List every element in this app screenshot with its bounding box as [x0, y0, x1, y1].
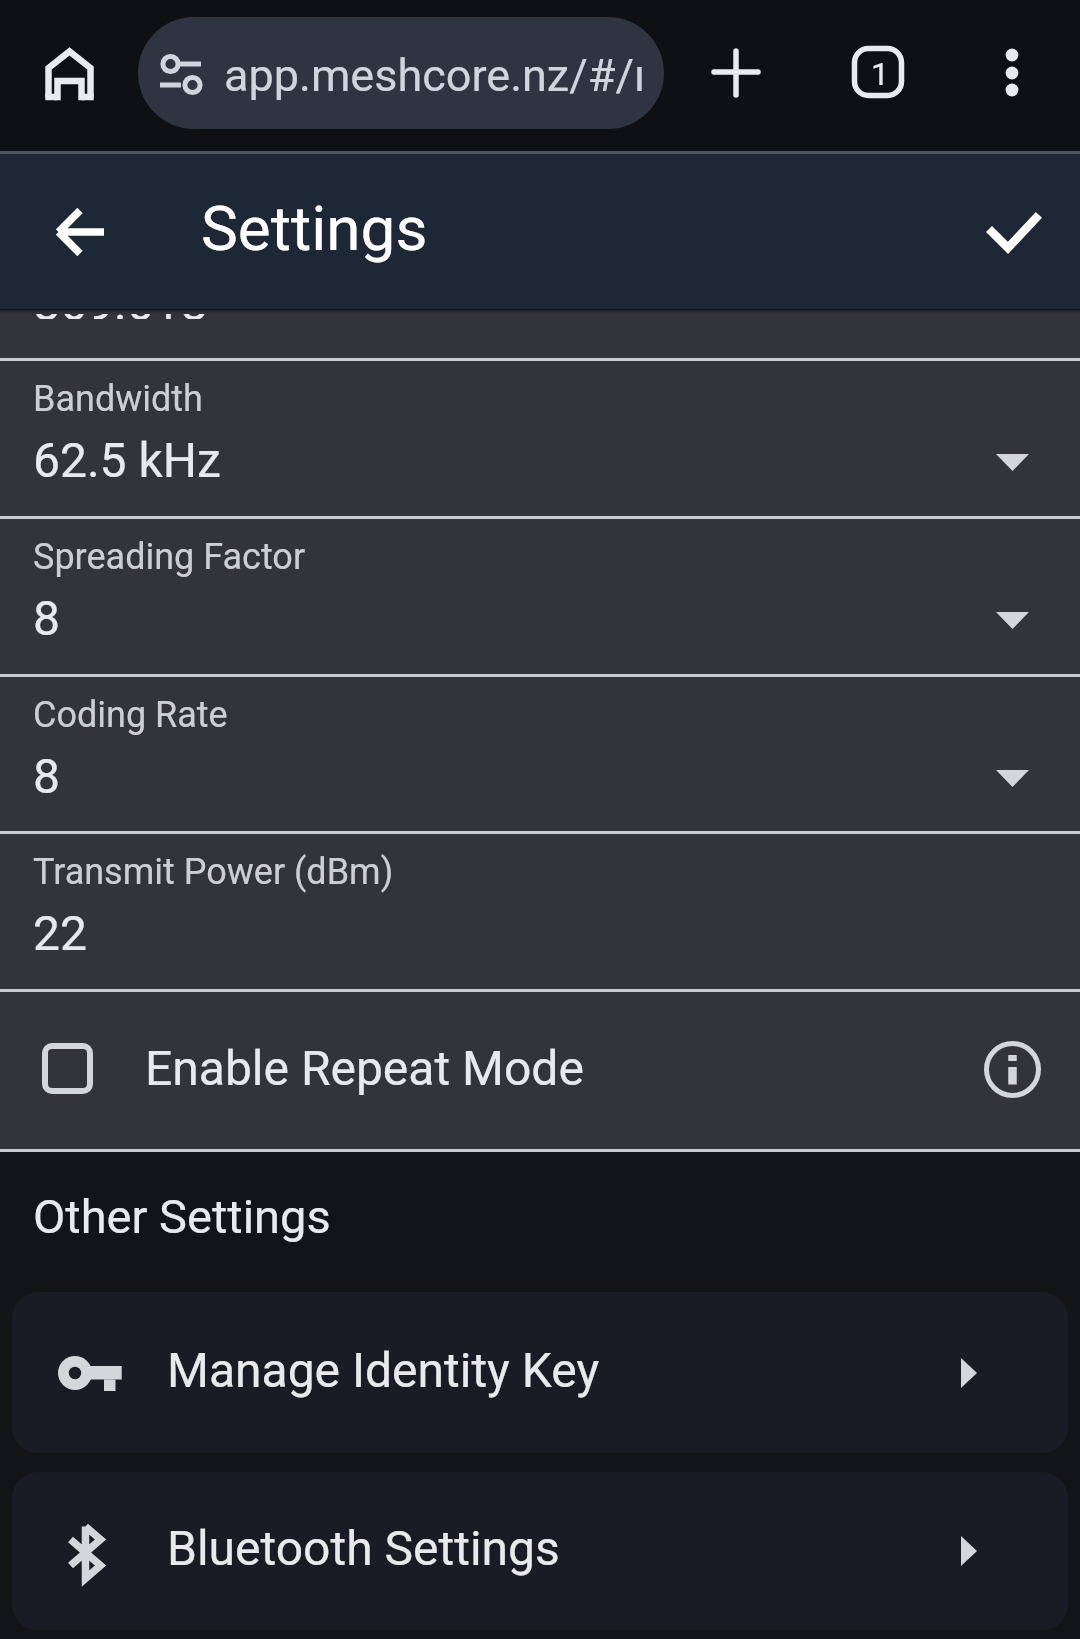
staticText: Settings [201, 192, 428, 265]
button[interactable]: Transmit Power (dBm) [0, 834, 1080, 989]
staticText: Enable Repeat Mode [145, 1040, 584, 1096]
staticText: Bandwidth [33, 378, 203, 420]
button[interactable]: Tabs [832, 26, 924, 118]
staticText: 62.5 kHz [33, 432, 221, 488]
button[interactable]: Home [29, 32, 109, 112]
staticText: Manage Identity Key [167, 1342, 600, 1398]
button[interactable]: More options [966, 26, 1058, 118]
button[interactable]: New tab [690, 26, 782, 118]
button[interactable]: Enable Repeat Mode [0, 992, 1080, 1149]
button[interactable]: app.meshcore.nz/#/ı [138, 17, 664, 129]
staticText: 8 [33, 748, 60, 804]
staticText: Bluetooth Settings [167, 1520, 560, 1576]
button[interactable]: Back [29, 184, 125, 280]
staticText: Coding Rate [33, 694, 228, 736]
button[interactable]: Spreading Factor [0, 519, 1080, 674]
staticText: 1 [871, 55, 889, 93]
button[interactable]: Bandwidth [0, 361, 1080, 516]
staticText: app.meshcore.nz/#/ı [224, 49, 646, 102]
staticText: 869.618 [33, 314, 208, 319]
staticText: 8 [33, 590, 60, 646]
button[interactable]: Manage Identity Key [12, 1292, 1068, 1453]
staticText: Other Settings [33, 1189, 331, 1244]
button[interactable]: Coding Rate [0, 677, 1080, 831]
button[interactable]: Save [962, 184, 1058, 280]
staticText: 22 [33, 905, 87, 961]
button[interactable]: Bluetooth Settings [12, 1472, 1068, 1630]
staticText: Spreading Factor [33, 536, 306, 578]
button[interactable]: Info [984, 1041, 1041, 1098]
staticText: Transmit Power (dBm) [33, 851, 394, 893]
